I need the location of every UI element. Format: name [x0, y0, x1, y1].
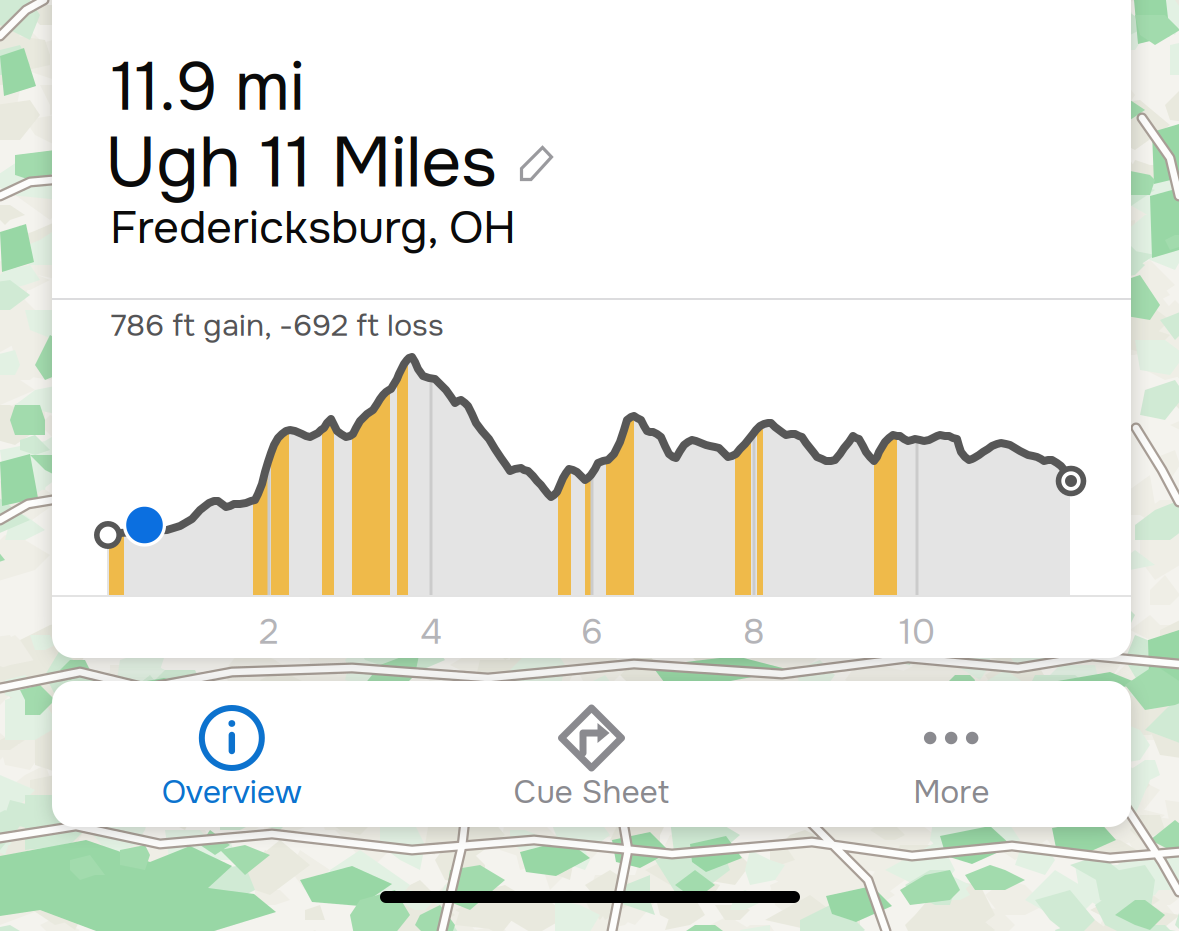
- staticText: Ugh 11 Miles: [105, 118, 497, 208]
- staticText: More: [913, 772, 989, 813]
- staticText: 6: [581, 610, 603, 654]
- staticText: 2: [259, 610, 279, 654]
- button[interactable]: More: [771, 681, 1131, 827]
- staticText: Fredericksburg, OH: [110, 199, 516, 257]
- staticText: Overview: [162, 772, 302, 813]
- button[interactable]: Rename route: [520, 145, 553, 182]
- staticText: Cue Sheet: [513, 772, 669, 813]
- staticText: 8: [743, 610, 765, 654]
- staticText: 786 ft gain, -692 ft loss: [111, 306, 444, 345]
- button[interactable]: Cue Sheet: [412, 681, 771, 827]
- staticText: 4: [420, 610, 442, 654]
- button[interactable]: Overview: [52, 681, 412, 827]
- staticText: 10: [899, 610, 935, 654]
- staticText: 11.9 mi: [111, 45, 305, 130]
